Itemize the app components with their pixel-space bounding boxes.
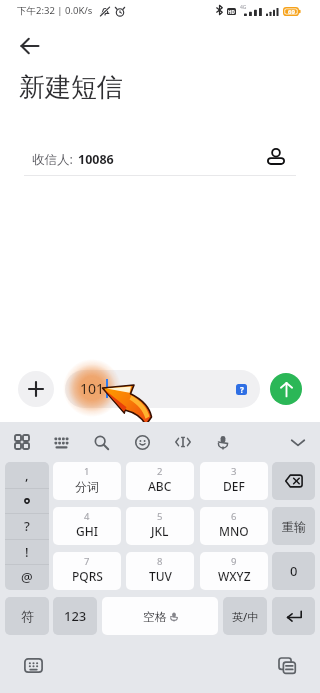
button[interactable]: Choose contact xyxy=(260,141,292,173)
button[interactable]: @ xyxy=(5,564,49,590)
staticText: HD xyxy=(228,9,235,15)
staticText: 10086 xyxy=(78,151,114,168)
staticText: 3 xyxy=(231,465,237,478)
button[interactable]: Send xyxy=(270,373,302,405)
button[interactable]: Add xyxy=(18,371,54,407)
staticText: 69 xyxy=(288,8,295,16)
button[interactable]: 7 xyxy=(53,552,121,590)
button[interactable]: 2 xyxy=(126,462,194,500)
button[interactable]: , xyxy=(5,462,49,488)
button[interactable]: Help xyxy=(236,384,247,395)
staticText: 符 xyxy=(21,608,34,624)
button[interactable]: ? xyxy=(5,513,49,539)
button[interactable]: 重输 xyxy=(272,507,315,545)
button[interactable]: 空格 xyxy=(102,597,218,635)
button[interactable]: 6 xyxy=(200,507,268,545)
staticText: TUV xyxy=(149,568,172,584)
staticText: GHI xyxy=(76,523,98,539)
button[interactable]: 4 xyxy=(53,507,121,545)
staticText: 分词 xyxy=(75,479,99,494)
button[interactable]: Help xyxy=(65,370,260,408)
staticText: ? xyxy=(24,517,30,535)
staticText: 重输 xyxy=(282,519,306,534)
button[interactable]: 5 xyxy=(126,507,194,545)
button[interactable] xyxy=(5,488,49,514)
button[interactable]: Back xyxy=(12,28,48,64)
staticText: 101 xyxy=(80,379,105,398)
staticText: 4G xyxy=(240,4,247,11)
staticText: 8 xyxy=(157,555,163,568)
button[interactable]: 符 xyxy=(5,597,49,635)
staticText: MNO xyxy=(219,523,249,539)
button[interactable]: Emoji xyxy=(128,428,156,456)
staticText: 2 xyxy=(157,465,163,478)
button[interactable]: Switch keyboard xyxy=(19,651,47,679)
staticText: JKL xyxy=(151,523,169,539)
button[interactable]: Panels xyxy=(8,428,36,456)
button[interactable]: Keyboard layout xyxy=(47,428,75,456)
staticText: 7 xyxy=(84,555,90,568)
button[interactable]: Text editing xyxy=(169,428,197,456)
staticText: ? xyxy=(240,384,244,395)
button[interactable]: Enter xyxy=(272,597,315,635)
button[interactable]: 8 xyxy=(126,552,194,590)
staticText: , xyxy=(25,466,29,484)
button[interactable]: 9 xyxy=(200,552,268,590)
button[interactable]: 1 xyxy=(53,462,121,500)
staticText: ABC xyxy=(148,478,172,494)
button[interactable]: 3 xyxy=(200,462,268,500)
button[interactable]: Voice input xyxy=(209,428,237,456)
staticText: DEF xyxy=(223,478,245,494)
staticText: 123 xyxy=(64,607,87,625)
staticText: 5 xyxy=(157,510,163,523)
button[interactable]: Clipboard xyxy=(273,651,301,679)
button[interactable]: 英/中 xyxy=(223,597,267,635)
staticText: 空格 xyxy=(143,609,167,624)
button[interactable]: ! xyxy=(5,539,49,565)
staticText: 4 xyxy=(84,510,90,523)
staticText: 6 xyxy=(231,510,237,523)
button[interactable]: Search xyxy=(87,428,115,456)
staticText: WXYZ xyxy=(218,568,251,584)
staticText: @ xyxy=(21,568,33,586)
staticText: 9 xyxy=(231,555,237,568)
button[interactable]: Backspace xyxy=(272,462,315,500)
staticText: 1 xyxy=(84,465,90,478)
staticText: PQRS xyxy=(72,568,103,584)
staticText: 0 xyxy=(290,562,298,580)
staticText: 新建短信 xyxy=(19,71,123,104)
button[interactable]: 0 xyxy=(272,552,315,590)
staticText: ! xyxy=(25,543,29,561)
button[interactable]: 123 xyxy=(53,597,97,635)
staticText: 下午2:32 | 0.0K/s xyxy=(17,4,93,17)
staticText: 英/中 xyxy=(232,609,259,624)
button[interactable]: Hide keyboard xyxy=(284,428,312,456)
staticText: 收信人: xyxy=(32,151,73,168)
